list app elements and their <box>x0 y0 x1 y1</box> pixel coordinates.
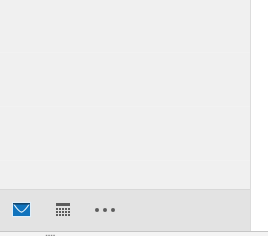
button[interactable]: Mail <box>0 189 42 231</box>
button[interactable]: Calendar <box>42 189 84 231</box>
button[interactable]: More options <box>84 189 126 231</box>
